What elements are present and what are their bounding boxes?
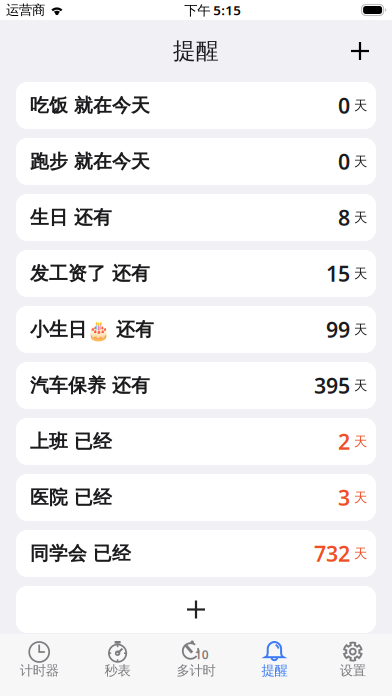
staticText: 3	[338, 483, 350, 512]
staticText: 天	[350, 377, 367, 394]
button[interactable]: 计时器	[0, 640, 78, 696]
staticText: 0	[338, 91, 350, 120]
staticText: 0	[338, 147, 350, 176]
staticText: 医院 已经	[30, 486, 112, 509]
button[interactable]: 生日 还有	[16, 194, 376, 241]
staticText: 天	[350, 153, 367, 170]
staticText: 732	[314, 539, 350, 568]
staticText: 天	[350, 97, 367, 114]
staticText: 天	[350, 265, 367, 282]
button[interactable]: 跑步 就在今天	[16, 138, 376, 185]
staticText: 提醒	[173, 37, 219, 65]
staticText: 天	[350, 321, 367, 338]
button[interactable]: 10	[157, 640, 235, 696]
staticText: 秒表	[105, 662, 131, 679]
staticText: 跑步 就在今天	[30, 150, 150, 173]
button[interactable]: 同学会 已经	[16, 530, 376, 577]
staticText: 2	[338, 427, 350, 456]
staticText: 提醒	[261, 662, 287, 679]
button[interactable]: 汽车保养 还有	[16, 362, 376, 409]
button[interactable]: 提醒	[235, 640, 314, 696]
staticText: 天	[350, 209, 367, 226]
staticText: 计时器	[20, 662, 59, 679]
staticText: 多计时	[176, 662, 215, 679]
staticText: 发工资了 还有	[30, 262, 150, 285]
button[interactable]: 小生日🎂 还有	[16, 306, 376, 353]
button[interactable]: 发工资了 还有	[16, 250, 376, 297]
staticText: 同学会 已经	[30, 542, 131, 565]
button[interactable]: 医院 已经	[16, 474, 376, 521]
staticText: 小生日🎂 还有	[30, 318, 154, 341]
staticText: 10	[195, 647, 209, 662]
staticText: 运营商	[6, 2, 45, 18]
staticText: 天	[350, 489, 367, 506]
staticText: 天	[350, 433, 367, 450]
staticText: 下午 5:15	[184, 1, 241, 19]
staticText: 设置	[340, 662, 366, 679]
staticText: 上班 已经	[30, 430, 112, 453]
staticText: 15	[326, 259, 350, 288]
button[interactable]: 添加提醒	[333, 26, 387, 76]
staticText: 生日 还有	[30, 206, 112, 229]
staticText: 99	[326, 315, 350, 344]
button[interactable]: 吃饭 就在今天	[16, 82, 376, 129]
staticText: 395	[314, 371, 350, 400]
button[interactable]: 上班 已经	[16, 418, 376, 465]
staticText: 吃饭 就在今天	[30, 94, 150, 117]
staticText: 8	[338, 203, 350, 232]
staticText: 天	[350, 545, 367, 562]
button[interactable]: 新建提醒	[16, 586, 376, 633]
button[interactable]: 秒表	[78, 640, 157, 696]
button[interactable]: 设置	[314, 640, 392, 696]
staticText: 汽车保养 还有	[30, 374, 150, 397]
